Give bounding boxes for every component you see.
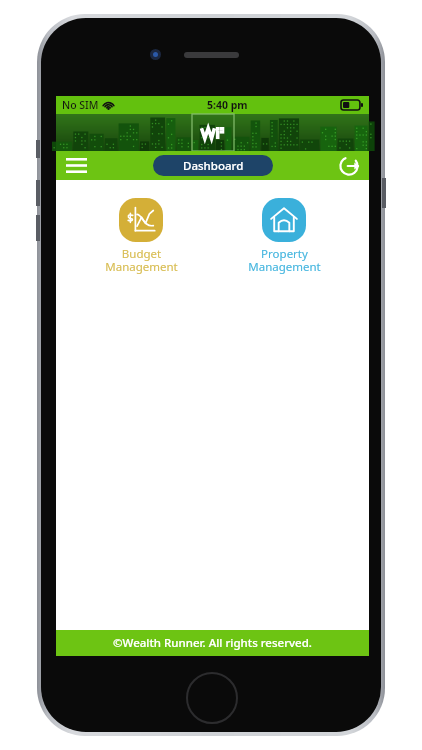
staticText: 5:40 pm xyxy=(207,98,248,112)
button[interactable]: Budget Management xyxy=(82,198,200,275)
staticText: ©Wealth Runner. All rights reserved. xyxy=(113,635,312,651)
button[interactable]: Logout xyxy=(329,151,369,180)
staticText: Dashboard xyxy=(183,158,244,174)
staticText: Property Management xyxy=(248,246,321,275)
staticText: No SIM xyxy=(62,98,99,112)
button[interactable]: Menu xyxy=(56,151,96,180)
button[interactable]: Dashboard xyxy=(153,155,273,176)
button[interactable]: Property Management xyxy=(225,198,343,275)
staticText: Budget Management xyxy=(105,246,178,275)
